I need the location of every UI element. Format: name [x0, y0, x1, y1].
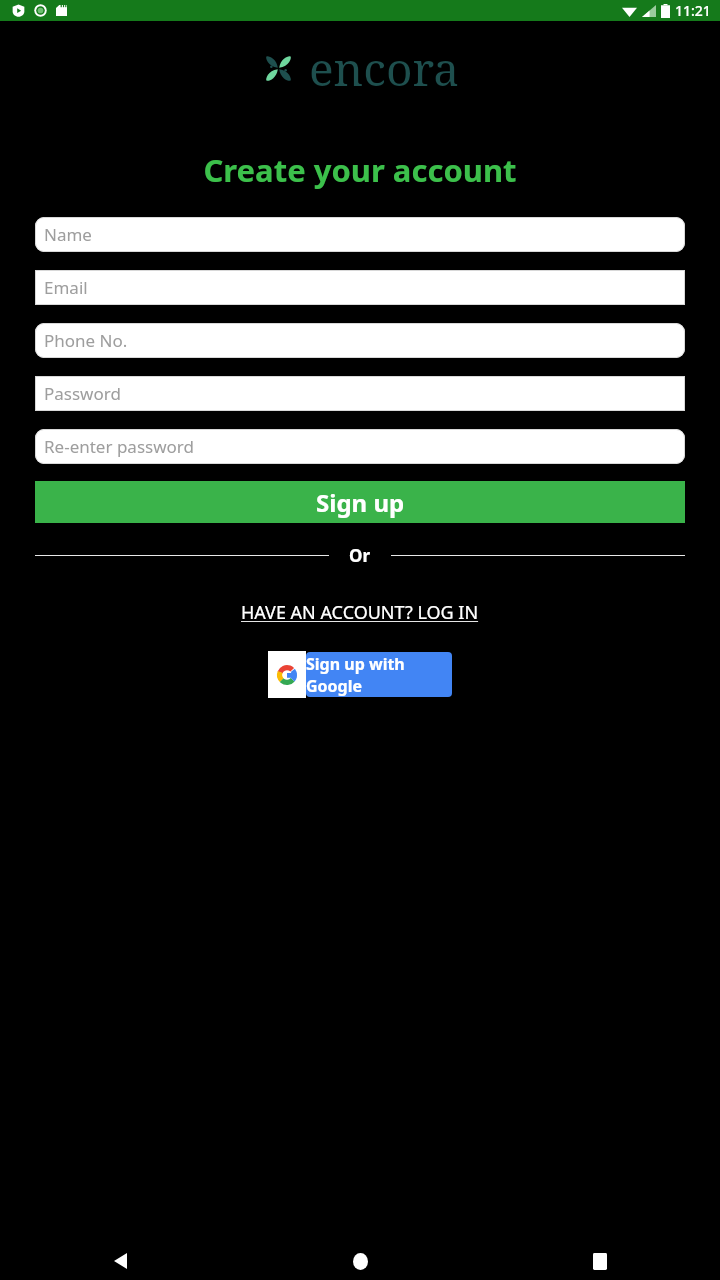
button[interactable]: Password	[35, 376, 685, 411]
staticText: Or	[349, 544, 371, 567]
button[interactable]: Sign up	[35, 481, 685, 523]
staticText: Phone No.	[44, 329, 128, 352]
staticText: Create your account	[0, 149, 720, 191]
staticText: Email	[44, 276, 88, 299]
button[interactable]: Back	[0, 1242, 240, 1280]
staticText: Sign up with Google	[306, 653, 452, 697]
staticText: encora	[309, 37, 460, 100]
button[interactable]: Phone No.	[35, 323, 685, 358]
button[interactable]: Sign up with Google	[268, 651, 452, 698]
staticText: 11:21	[675, 1, 711, 20]
button[interactable]: Re-enter password	[35, 429, 685, 464]
button[interactable]: HAVE AN ACCOUNT? LOG IN	[235, 597, 485, 628]
staticText: Re-enter password	[44, 435, 194, 458]
button[interactable]: Recent apps	[480, 1242, 720, 1280]
staticText: Sign up	[316, 486, 405, 519]
staticText: HAVE AN ACCOUNT? LOG IN	[241, 600, 479, 625]
staticText: Name	[44, 223, 92, 246]
button[interactable]: Home	[240, 1242, 480, 1280]
staticText: Password	[44, 382, 121, 405]
button[interactable]: Email	[35, 270, 685, 305]
button[interactable]: Name	[35, 217, 685, 252]
